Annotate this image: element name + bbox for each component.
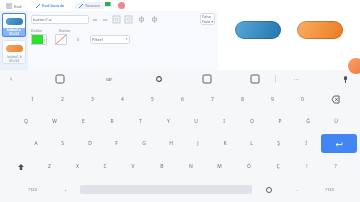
button[interactable]: 2 (47, 88, 77, 110)
button[interactable]: V (119, 155, 147, 178)
button[interactable]: A (23, 132, 49, 155)
button[interactable]: H (157, 132, 184, 155)
staticText: O (250, 118, 254, 125)
button[interactable]: Effects (125, 16, 132, 23)
button[interactable]: 3 (77, 88, 107, 110)
button[interactable]: 8 (227, 88, 257, 110)
button[interactable]: R (98, 110, 126, 132)
button[interactable]: 0 (287, 88, 317, 110)
staticText: 7 (211, 96, 214, 103)
staticText: Kod burada (42, 3, 65, 8)
button[interactable]: Add (348, 58, 360, 74)
button[interactable]: Align left (138, 16, 145, 23)
button[interactable]: Y (154, 110, 182, 132)
staticText: 5 (151, 96, 154, 103)
button[interactable]: I (210, 110, 238, 132)
button[interactable]: W (40, 110, 69, 132)
button[interactable]: ▾ (31, 34, 47, 45)
button[interactable]: button1-a (235, 21, 281, 39)
button[interactable]: Shift (7, 155, 35, 178)
button[interactable]: N (176, 155, 205, 178)
button[interactable]: L (238, 132, 265, 155)
staticText: Y (167, 118, 170, 125)
staticText: . (296, 186, 298, 193)
staticText: button1-b (7, 55, 22, 59)
button[interactable]: X (63, 155, 91, 178)
staticText: Doldur (31, 28, 43, 33)
button[interactable]: 1 (18, 88, 47, 110)
staticText: Daha (202, 14, 211, 19)
button[interactable]: ?123 (309, 178, 349, 201)
button[interactable]: P (266, 110, 294, 132)
button[interactable]: Piksel (90, 35, 130, 44)
button[interactable]: Emoji (254, 178, 284, 201)
button[interactable]: Back (6, 74, 16, 84)
button[interactable]: Daha (200, 13, 215, 25)
button[interactable]: Kod (4, 3, 24, 9)
button[interactable]: B (147, 155, 176, 178)
button[interactable]: F (103, 132, 130, 155)
button[interactable]: C (91, 155, 119, 178)
button[interactable]: Ç (263, 155, 292, 178)
button[interactable]: O (238, 110, 266, 132)
button[interactable]: Stroke color (55, 34, 67, 45)
staticText: Q (24, 118, 28, 125)
button[interactable]: 4 (107, 88, 137, 110)
button[interactable]: Kod burada (32, 2, 69, 9)
button[interactable]: Crop (113, 16, 120, 23)
staticText: V (131, 163, 135, 170)
button[interactable]: Backspace (317, 88, 353, 110)
button[interactable]: İ (292, 132, 319, 155)
button[interactable]: Ş (265, 132, 292, 155)
button[interactable]: 9 (257, 88, 287, 110)
button[interactable]: S (49, 132, 76, 155)
button[interactable]: E (69, 110, 98, 132)
button[interactable]: 5 (137, 88, 167, 110)
button[interactable]: D (76, 132, 103, 155)
button[interactable]: Settings (155, 75, 163, 83)
staticText: K (223, 140, 227, 147)
staticText: J (197, 140, 199, 147)
button[interactable]: button1-a (2, 13, 26, 37)
button[interactable]: Align right (151, 16, 158, 23)
button[interactable]: button1-b (2, 40, 26, 64)
button[interactable]: K (211, 132, 238, 155)
button[interactable]: button1-b (297, 21, 343, 39)
button[interactable]: GIF (104, 75, 115, 84)
button[interactable]: 6 (167, 88, 197, 110)
button[interactable]: Translate (251, 75, 259, 83)
button[interactable]: More (292, 74, 301, 84)
button[interactable]: ? (321, 155, 350, 178)
button[interactable]: button1-a (31, 15, 89, 24)
button[interactable]: Clipboard (203, 75, 211, 83)
button[interactable]: T (126, 110, 154, 132)
staticText: Ş (277, 140, 280, 147)
button[interactable]: M (205, 155, 234, 178)
button[interactable]: Stop (118, 2, 125, 9)
staticText: ? (334, 163, 337, 170)
button[interactable]: U (182, 110, 210, 132)
button[interactable]: 7 (197, 88, 227, 110)
button[interactable]: J (184, 132, 211, 155)
button[interactable]: Voice input (341, 75, 350, 84)
button[interactable]: Sticker (56, 75, 64, 83)
staticText: GIF (106, 77, 113, 82)
button[interactable]: Enter (321, 134, 357, 153)
button[interactable]: Ö (234, 155, 263, 178)
button[interactable]: Q (11, 110, 40, 132)
button[interactable]: Z (35, 155, 63, 178)
staticText: 9 (271, 96, 274, 103)
button[interactable]: G (130, 132, 157, 155)
staticText: 8 (241, 96, 244, 103)
staticText: İ (305, 140, 307, 147)
button[interactable]: Ğ (294, 110, 322, 132)
staticText: , (65, 186, 67, 193)
button[interactable]: Run (105, 2, 112, 9)
button[interactable]: ?123 (12, 178, 53, 201)
button[interactable]: ! (292, 155, 321, 178)
button[interactable]: Ü (322, 110, 350, 132)
button[interactable]: Tasarım (75, 2, 105, 9)
